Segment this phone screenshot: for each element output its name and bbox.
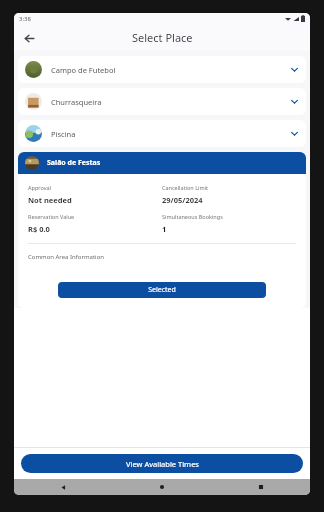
button[interactable]: Piscina <box>18 120 306 147</box>
staticText: Reservation Value <box>28 213 75 220</box>
staticText: Select Place <box>132 30 193 45</box>
staticText: R$ 0.0 <box>28 224 50 234</box>
staticText: Churrasqueira <box>51 97 290 107</box>
staticText: 29/05/2024 <box>162 195 203 205</box>
button[interactable]: Recent apps <box>211 479 310 495</box>
staticText: 3:38 <box>19 15 31 23</box>
staticText: Common Area Information <box>28 253 104 261</box>
button[interactable]: Churrasqueira <box>18 88 306 115</box>
staticText: Selected <box>148 285 176 295</box>
button[interactable]: Campo de Futebol <box>18 56 306 83</box>
button[interactable]: Selected <box>58 282 266 298</box>
staticText: Cancellation Limit <box>162 184 209 191</box>
staticText: Piscina <box>51 129 290 139</box>
staticText: 1 <box>162 224 167 234</box>
staticText: Not needed <box>28 195 72 205</box>
button[interactable]: Back <box>14 479 112 495</box>
staticText: Salão de Festas <box>47 158 101 168</box>
button[interactable]: View Available Times <box>21 454 303 473</box>
staticText: View Available Times <box>126 459 199 469</box>
staticText: Approval <box>28 184 51 191</box>
button[interactable]: Home <box>112 479 211 495</box>
staticText: Simultaneous Bookings <box>162 213 223 220</box>
button[interactable]: Back <box>17 26 41 50</box>
button[interactable]: Salão de Festas <box>18 152 306 174</box>
staticText: Campo de Futebol <box>51 65 290 75</box>
